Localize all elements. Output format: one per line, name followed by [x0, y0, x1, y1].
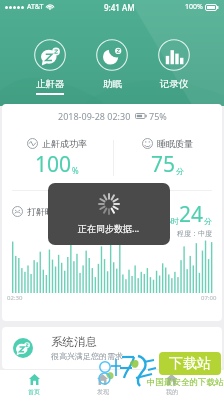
staticText: 中国最安全的下载站 — [147, 377, 224, 388]
staticText: % — [72, 165, 79, 176]
button[interactable]: 发现 — [68, 370, 137, 400]
staticText: AT&T — [27, 2, 44, 12]
staticText: 发现 — [97, 388, 109, 396]
staticText: 07:00 — [201, 294, 217, 302]
staticText: 02:30 — [7, 294, 23, 302]
staticText: 止鼾成功率 — [42, 138, 87, 149]
staticText: 75% — [149, 110, 167, 122]
button[interactable]: 首页 — [0, 370, 68, 400]
staticText: 记录仪 — [160, 78, 189, 90]
staticText: 24 — [179, 200, 204, 229]
other: 我的 — [166, 374, 177, 385]
staticText: 分 — [176, 166, 184, 176]
button[interactable]: 系统消息 — [2, 327, 222, 369]
button[interactable]: 记录仪 — [143, 39, 205, 93]
button[interactable]: 我的 — [137, 370, 206, 400]
other: 首页 — [29, 374, 40, 385]
staticText: 75 — [151, 150, 176, 179]
staticText: 打鼾时长 — [27, 206, 63, 217]
other: 发现 — [97, 374, 108, 385]
staticText: 100% — [185, 2, 203, 12]
staticText: 助眠 — [103, 78, 122, 90]
staticText: 2018-09-28 02:30 — [58, 110, 131, 122]
button[interactable]: 止鼾器 — [19, 39, 81, 95]
staticText: 睡眠质量 — [157, 138, 193, 149]
staticText: 我的 — [166, 388, 178, 396]
button[interactable]: 助眠 — [81, 39, 143, 93]
staticText: 首页 — [28, 388, 40, 396]
staticText: 分 — [204, 216, 212, 226]
staticText: 很高兴满足您的需求 — [51, 351, 123, 361]
staticText: 系统消息 — [51, 335, 97, 349]
staticText: 下载站 — [169, 355, 211, 373]
staticText: 100 — [35, 150, 72, 179]
staticText: 9:41 AM — [104, 2, 135, 13]
staticText: 止鼾器 — [36, 78, 65, 90]
staticText: 程度：中度 — [177, 229, 212, 238]
staticText: 正在同步数据... — [78, 222, 140, 234]
staticText: 小时 — [163, 216, 179, 226]
